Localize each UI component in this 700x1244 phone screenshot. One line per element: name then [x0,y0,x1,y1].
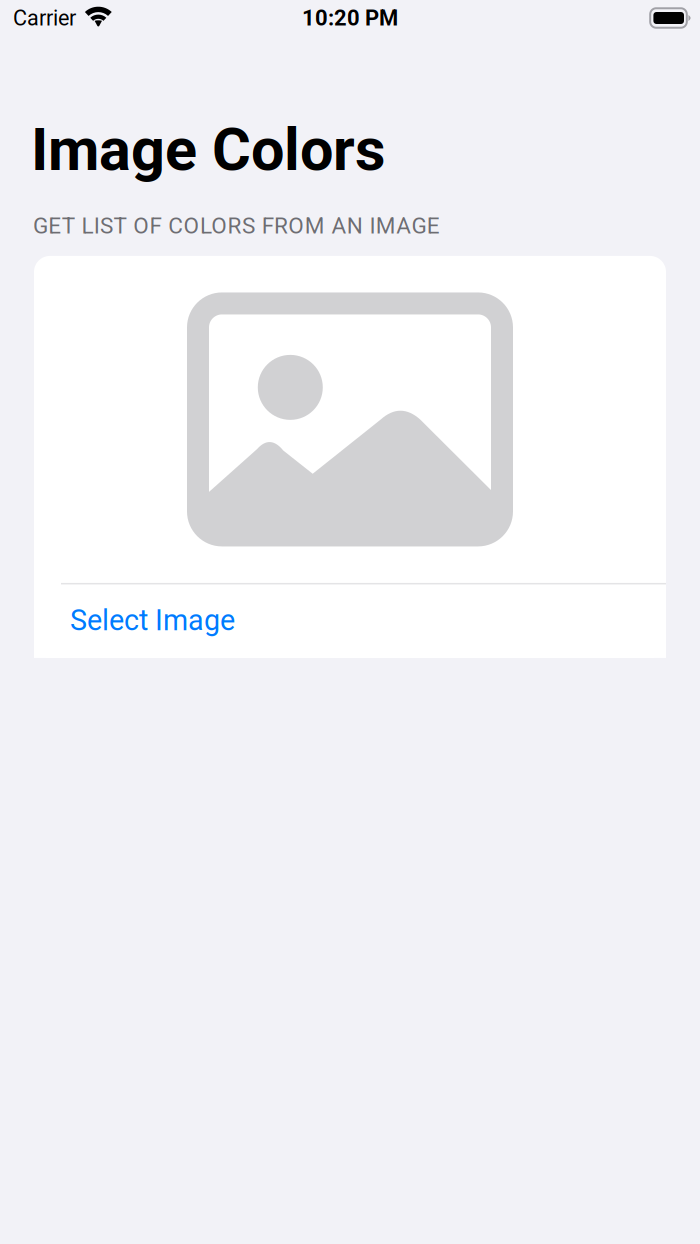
staticText: GET LIST OF COLORS FROM AN IMAGE [33,212,440,239]
staticText: 10:20 PM [302,5,398,31]
staticText: Image Colors [31,115,385,184]
staticText: Carrier [13,5,76,31]
staticText: Select Image [70,604,235,637]
button[interactable]: Select Image [34,583,666,658]
